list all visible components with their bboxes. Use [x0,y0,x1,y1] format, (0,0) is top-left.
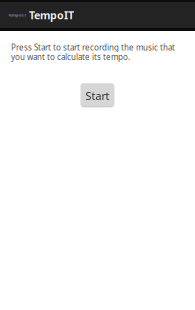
button[interactable]: Start [80,83,114,107]
staticText: TempoIT [29,8,74,22]
staticText: Press Start to start recording the music… [11,42,175,62]
staticText: TempoIT [8,12,26,18]
staticText: Start [85,89,109,103]
